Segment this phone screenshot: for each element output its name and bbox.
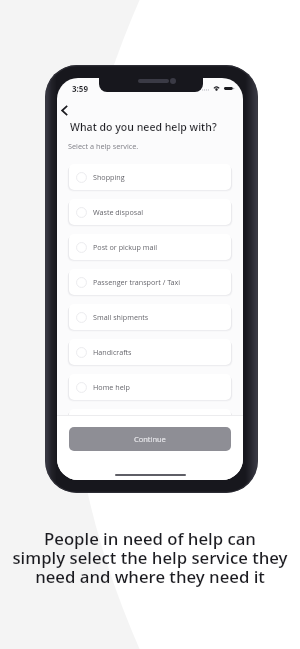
staticText: Continue [134,434,166,444]
button[interactable] [69,409,231,435]
button[interactable]: Waste disposal [69,199,231,225]
button[interactable]: Post or pickup mail [69,234,231,260]
button[interactable]: Home help [69,374,231,400]
button[interactable]: Continue [69,427,231,451]
staticText: Post or pickup mail [93,242,158,252]
staticText: Passenger transport / Taxi [93,277,181,287]
staticText: Waste disposal [93,207,144,217]
staticText: Home help [93,382,130,392]
staticText: Shopping [93,172,125,182]
staticText: Small shipments [93,312,149,322]
staticText: 3:59 [72,83,88,94]
staticText: What do you need help with? [70,120,217,134]
button[interactable]: Small shipments [69,304,231,330]
button[interactable]: Shopping [69,164,231,190]
button[interactable]: Handicrafts [69,339,231,365]
button[interactable]: Passenger transport / Taxi [69,269,231,295]
staticText: People in need of help can simply select… [12,527,288,588]
staticText: Select a help service. [68,141,139,151]
button[interactable]: Back [57,99,75,121]
staticText: Handicrafts [93,347,132,357]
